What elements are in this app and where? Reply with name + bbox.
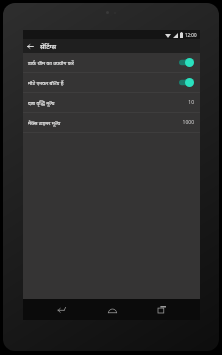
button[interactable] [179,78,194,87]
staticText: दाब वृद्धि मूल्य [28,99,188,106]
staticText: 12:00 [185,32,197,38]
button[interactable] [179,58,194,67]
button[interactable]: मोटे एनकर बोल्ड हैं [23,73,200,92]
button[interactable]: Home [99,299,125,320]
button[interactable]: Back [23,39,37,53]
button[interactable]: दाब वृद्धि मूल्य [23,93,200,112]
staticText: डार्क थीम का उपयोग करें [28,59,175,66]
button[interactable]: Back [48,299,74,320]
staticText: 10 [188,99,194,106]
staticText: मैक्स टाइमर मूल्य [28,119,182,126]
button[interactable]: मैक्स टाइमर मूल्य [23,113,200,132]
button[interactable]: Recent apps [149,299,175,320]
staticText: मोटे एनकर बोल्ड हैं [28,79,175,86]
staticText: सेटिंग्स [40,42,56,51]
staticText: 1000 [182,119,194,126]
button[interactable]: डार्क थीम का उपयोग करें [23,53,200,72]
